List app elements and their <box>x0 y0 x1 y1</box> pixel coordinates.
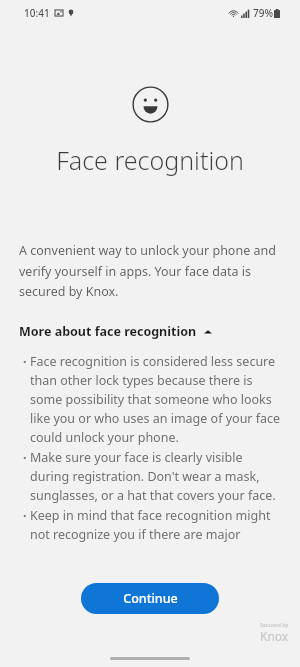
button[interactable]: More about face recognition <box>0 321 300 342</box>
staticText: Knox <box>260 628 289 644</box>
staticText: Continue <box>123 590 178 607</box>
staticText: A convenient way to unlock your phone an… <box>19 242 281 299</box>
staticText: Face recognition <box>56 143 244 177</box>
staticText: More about face recognition <box>19 323 197 340</box>
staticText: · <box>23 507 30 524</box>
staticText: · <box>23 353 30 370</box>
staticText: Keep in mind that face recognition might… <box>30 507 283 543</box>
staticText: Make sure your face is clearly visible d… <box>30 449 283 504</box>
staticText: Face recognition is considered less secu… <box>30 353 283 446</box>
staticText: Secured by <box>260 621 289 628</box>
staticText: 10:41 <box>24 6 50 20</box>
staticText: 79% <box>253 6 273 20</box>
staticText: · <box>23 449 30 466</box>
button[interactable]: Continue <box>81 583 219 614</box>
